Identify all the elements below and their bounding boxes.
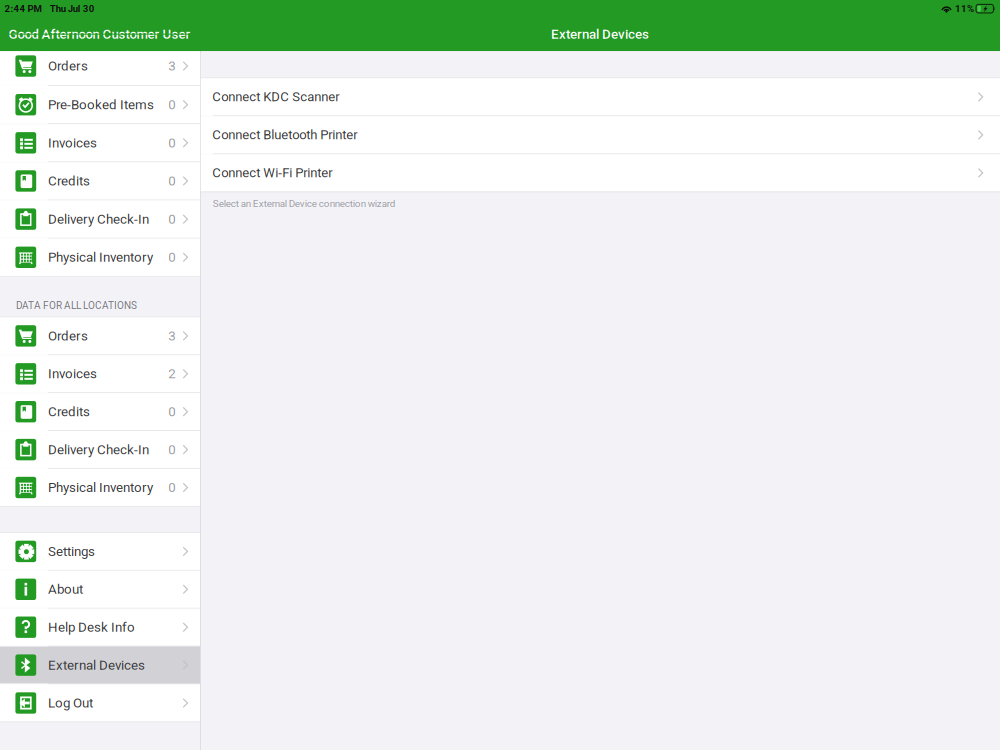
staticText: 0 xyxy=(168,480,175,495)
staticText: Delivery Check-In xyxy=(48,211,149,227)
button[interactable]: Connect KDC Scanner xyxy=(201,78,1000,115)
staticText: Physical Inventory xyxy=(48,480,153,495)
button[interactable]: External Devices xyxy=(0,647,200,684)
staticText: 2:44 PM xyxy=(4,3,41,14)
staticText: External Devices xyxy=(551,26,649,42)
staticText: Delivery Check-In xyxy=(48,442,149,457)
staticText: Credits xyxy=(48,404,90,419)
button[interactable]: Orders xyxy=(0,317,200,354)
staticText: Orders xyxy=(48,58,88,74)
button[interactable]: Connect Bluetooth Printer xyxy=(201,116,1000,153)
button[interactable]: Physical Inventory xyxy=(0,469,200,506)
staticText: 0 xyxy=(168,97,175,112)
staticText: DATA FOR ALL LOCATIONS xyxy=(16,300,137,311)
button[interactable]: Pre-Booked Items xyxy=(0,86,200,123)
staticText: 0 xyxy=(168,173,175,189)
button[interactable]: Credits xyxy=(0,162,200,200)
staticText: 0 xyxy=(168,135,175,151)
staticText: 2 xyxy=(168,366,175,382)
staticText: Connect Wi-Fi Printer xyxy=(212,165,332,180)
button[interactable]: Settings xyxy=(0,533,200,570)
staticText: Help Desk Info xyxy=(48,619,135,635)
staticText: 0 xyxy=(168,404,175,419)
staticText: Invoices xyxy=(48,135,97,151)
button[interactable]: Help Desk Info xyxy=(0,609,200,646)
button[interactable]: Credits xyxy=(0,393,200,430)
button[interactable]: Physical Inventory xyxy=(0,239,200,276)
staticText: Good Afternoon Customer User xyxy=(8,26,190,42)
staticText: Select an External Device connection wiz… xyxy=(213,198,396,209)
staticText: Thu Jul 30 xyxy=(50,3,95,14)
button[interactable]: Orders xyxy=(0,51,200,85)
staticText: Log Out xyxy=(48,695,93,711)
button[interactable]: Delivery Check-In xyxy=(0,200,200,238)
staticText: Invoices xyxy=(48,366,97,382)
staticText: Credits xyxy=(48,173,90,189)
staticText: About xyxy=(48,581,83,597)
staticText: 0 xyxy=(168,442,175,457)
staticText: Pre-Booked Items xyxy=(48,97,154,112)
staticText: 0 xyxy=(168,249,175,265)
staticText: Connect KDC Scanner xyxy=(212,89,339,104)
staticText: Physical Inventory xyxy=(48,249,153,265)
staticText: Orders xyxy=(48,328,88,344)
staticText: 11% xyxy=(955,3,974,14)
button[interactable]: About xyxy=(0,571,200,608)
staticText: External Devices xyxy=(48,657,145,673)
button[interactable]: Connect Wi-Fi Printer xyxy=(201,154,1000,191)
button[interactable]: Log Out xyxy=(0,684,200,722)
button[interactable]: Invoices xyxy=(0,355,200,392)
button[interactable]: Delivery Check-In xyxy=(0,431,200,468)
staticText: 3 xyxy=(168,58,175,74)
staticText: Connect Bluetooth Printer xyxy=(212,127,357,142)
staticText: 0 xyxy=(168,211,175,227)
staticText: 3 xyxy=(168,328,175,344)
staticText: Settings xyxy=(48,544,95,559)
button[interactable]: Invoices xyxy=(0,124,200,161)
